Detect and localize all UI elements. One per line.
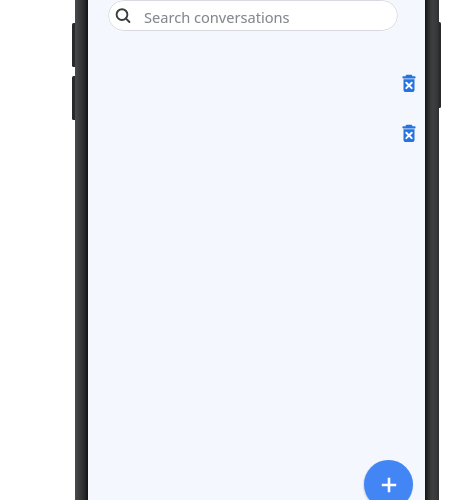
button[interactable] bbox=[397, 72, 421, 96]
staticText: Search conversations bbox=[144, 7, 290, 27]
button[interactable] bbox=[397, 122, 421, 146]
button[interactable] bbox=[364, 460, 413, 500]
button[interactable]: Search conversations bbox=[108, 0, 398, 31]
